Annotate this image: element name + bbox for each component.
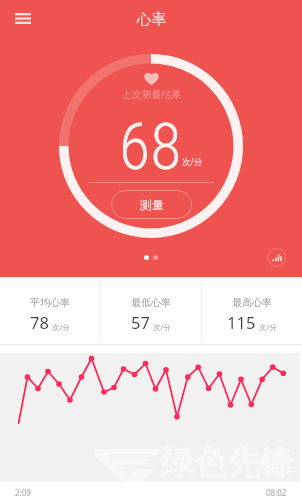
staticText: 2:09 [15, 487, 31, 498]
button[interactable]: History chart [264, 245, 289, 270]
staticText: 心率 [137, 10, 166, 28]
staticText: 平均心率 [30, 296, 70, 309]
button[interactable]: Menu [0, 0, 46, 36]
staticText: 次/分 [182, 156, 203, 168]
staticText: 上次测量结果 [122, 89, 181, 101]
staticText: 测量 [140, 197, 164, 212]
staticText: 57 [131, 311, 150, 333]
staticText: 绿色先锋 [161, 442, 293, 484]
staticText: 次/分 [52, 322, 70, 332]
button[interactable]: 最低心率 [101, 277, 201, 344]
staticText: 最高心率 [232, 296, 272, 309]
staticText: 68 [119, 110, 182, 185]
button[interactable]: 测量 [111, 190, 192, 219]
staticText: 次/分 [259, 322, 277, 332]
staticText: 115 [227, 311, 256, 333]
staticText: 最低心率 [131, 296, 171, 309]
staticText: 08:02 [266, 487, 287, 498]
staticText: 78 [30, 311, 49, 333]
button[interactable]: 最高心率 [202, 277, 302, 344]
staticText: 次/分 [153, 322, 171, 332]
button[interactable]: 平均心率 [0, 277, 100, 344]
